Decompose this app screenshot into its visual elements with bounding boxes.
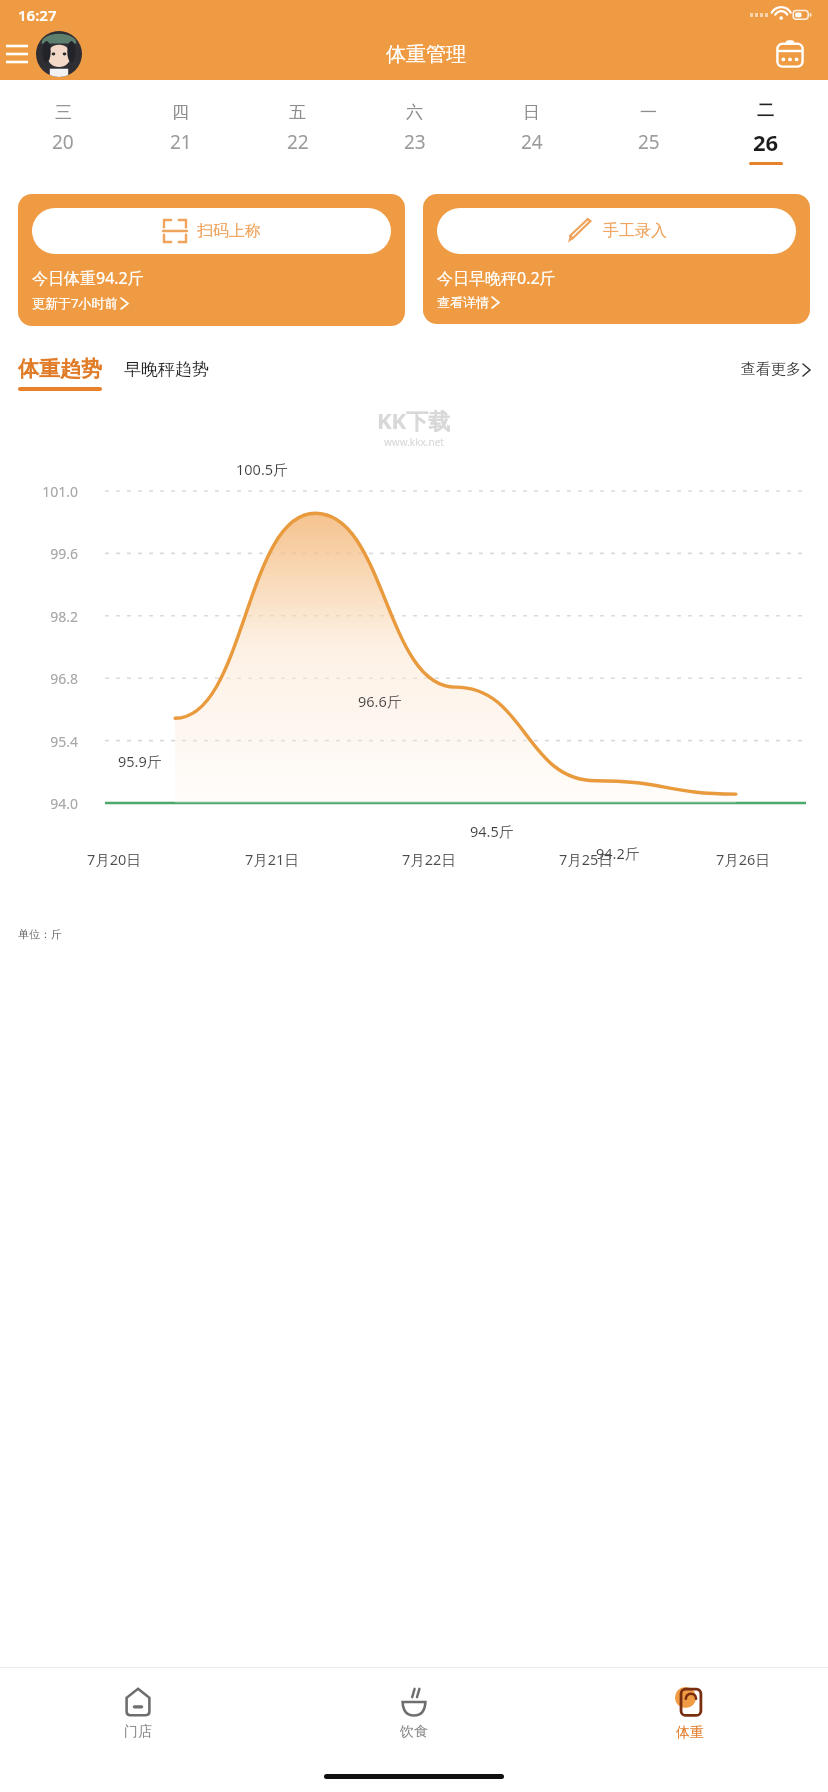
staticText: 96.6斤 — [358, 691, 402, 711]
staticText: 一 — [640, 102, 657, 123]
staticText: 23 — [404, 129, 426, 155]
staticText: 饮食 — [400, 1723, 428, 1741]
staticText: 三 — [55, 102, 72, 123]
button[interactable]: 六 — [356, 86, 473, 178]
staticText: 四 — [172, 102, 189, 123]
staticText: 7月25日 — [559, 849, 613, 869]
button[interactable]: 二 — [707, 86, 824, 178]
staticText: 今日体重94.2斤 — [32, 267, 144, 289]
button[interactable]: 日 — [473, 86, 590, 178]
button[interactable]: 五 — [239, 86, 356, 178]
staticText: 查看更多 — [741, 360, 801, 379]
staticText: 体重管理 — [386, 42, 466, 67]
staticText: KK下载 — [377, 405, 451, 435]
staticText: www.kkx.net — [384, 435, 444, 449]
button[interactable]: 扫码上称 — [32, 208, 391, 254]
staticText: 日 — [523, 102, 540, 123]
staticText: 手工录入 — [603, 221, 667, 241]
staticText: 22 — [287, 129, 309, 155]
staticText: 早晚秤趋势 — [124, 359, 209, 380]
staticText: 100.5斤 — [236, 459, 288, 479]
staticText: 94.2斤 — [596, 843, 640, 863]
staticText: 今日早晚秤0.2斤 — [437, 267, 556, 289]
button[interactable]: 体重趋势 — [18, 356, 102, 391]
button[interactable]: 扫码上称 — [18, 194, 405, 326]
staticText: 扫码上称 — [197, 221, 261, 241]
staticText: 7月21日 — [245, 849, 299, 869]
button[interactable]: 手工录入 — [437, 208, 796, 254]
staticText: 7月20日 — [87, 849, 141, 869]
button[interactable]: 门店 — [0, 1668, 276, 1760]
staticText: 94.0 — [0, 794, 78, 813]
staticText: 体重趋势 — [18, 356, 102, 382]
staticText: 24 — [521, 129, 543, 155]
button[interactable]: 四 — [122, 86, 239, 178]
staticText: 99.6 — [0, 544, 78, 563]
staticText: 94.5斤 — [470, 821, 514, 841]
staticText: 20 — [52, 129, 74, 155]
staticText: 查看详情 — [437, 294, 489, 310]
button[interactable]: 查看更多 — [741, 360, 810, 387]
staticText: 门店 — [124, 1723, 152, 1741]
button[interactable]: 三 — [4, 86, 122, 178]
button[interactable]: 饮食 — [276, 1668, 552, 1760]
staticText: 更新于7小时前 — [32, 294, 118, 312]
button[interactable]: 手工录入 — [423, 194, 810, 324]
staticText: 98.2 — [0, 607, 78, 626]
staticText: 16:27 — [18, 5, 57, 25]
staticText: 101.0 — [0, 482, 78, 501]
button[interactable] — [36, 31, 82, 77]
staticText: 二 — [757, 100, 774, 121]
staticText: 体重 — [676, 1724, 704, 1742]
staticText: 95.9斤 — [118, 751, 162, 771]
button[interactable]: 一 — [590, 86, 707, 178]
staticText: 单位：斤 — [18, 927, 62, 941]
staticText: 六 — [406, 102, 423, 123]
staticText: 96.8 — [0, 669, 78, 688]
staticText: 25 — [638, 129, 660, 155]
staticText: 五 — [289, 102, 306, 123]
button[interactable]: 早晚秤趋势 — [124, 359, 209, 388]
button[interactable]: Menu — [0, 37, 34, 71]
button[interactable]: Calendar — [770, 34, 810, 74]
staticText: 21 — [170, 129, 192, 155]
staticText: 7月26日 — [716, 849, 770, 869]
button[interactable]: 体重 — [552, 1668, 828, 1760]
staticText: 26 — [753, 127, 779, 157]
staticText: 7月22日 — [402, 849, 456, 869]
staticText: 95.4 — [0, 732, 78, 751]
